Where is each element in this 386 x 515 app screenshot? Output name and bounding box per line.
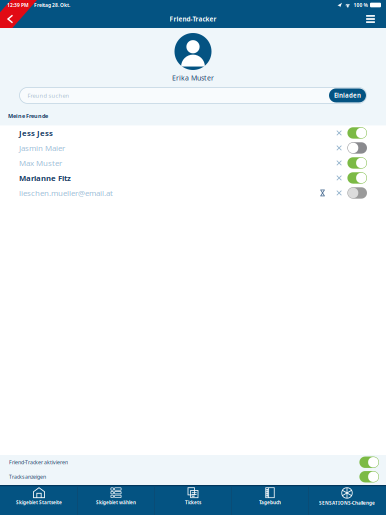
staticText: Skigebiet wählen — [96, 499, 136, 506]
button[interactable]: Jasmin Maier — [0, 140, 386, 155]
button[interactable]: Skigebiet wählen — [78, 486, 154, 515]
button[interactable]: Friend-Tracker aktivieren — [0, 455, 386, 469]
button[interactable]: Tracks anzeigen — [0, 469, 386, 484]
staticText: Friend-Tracker — [169, 15, 216, 23]
staticText: Einladen — [334, 91, 361, 100]
button[interactable]: Back — [0, 10, 23, 28]
staticText: Tracks anzeigen — [9, 473, 46, 480]
button[interactable]: Jess Jess — [0, 125, 386, 140]
staticText: Marianne Fitz — [19, 173, 71, 183]
button[interactable]: Skigebiet Startseite — [1, 486, 77, 515]
button[interactable]: Tagebuch — [232, 486, 308, 515]
staticText: Jess Jess — [19, 128, 53, 138]
staticText: Friend-Tracker aktivieren — [9, 459, 68, 466]
button[interactable]: Marianne Fitz — [0, 170, 386, 185]
staticText: Freund suchen — [27, 91, 69, 99]
button[interactable]: Tickets — [155, 486, 231, 515]
button[interactable]: Max Muster — [0, 155, 386, 170]
staticText: Jasmin Maier — [19, 143, 65, 153]
button[interactable]: lieschen.mueller@email.at — [0, 185, 386, 200]
staticText: Freitag 28. Okt. — [34, 2, 70, 8]
staticText: Max Muster — [19, 158, 62, 168]
staticText: 100 % — [353, 2, 367, 8]
staticText: Erika Muster — [172, 73, 214, 82]
staticText: SENSATIONS-Challenge — [319, 500, 375, 506]
button[interactable]: Einladen — [329, 88, 366, 102]
staticText: lieschen.mueller@email.at — [19, 188, 113, 198]
button[interactable]: Menu — [360, 10, 381, 28]
staticText: Tagebuch — [259, 499, 281, 506]
button[interactable]: SENSATIONS-Challenge — [309, 486, 385, 515]
staticText: Skigebiet Startseite — [16, 499, 62, 506]
staticText: 12:39 PM — [7, 2, 29, 8]
staticText: Meine Freunde — [8, 112, 48, 120]
staticText: Tickets — [185, 499, 201, 506]
